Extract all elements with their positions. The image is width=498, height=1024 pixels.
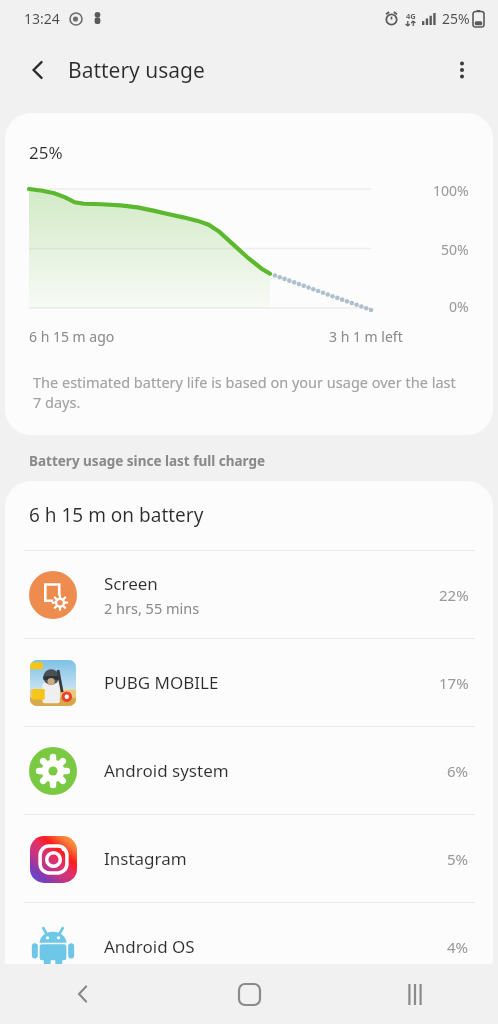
staticText: Android OS [104,935,195,958]
staticText: 100% [433,181,469,200]
staticText: 0% [449,297,469,316]
staticText: 13:24 [24,9,60,28]
staticText: 4G [406,11,416,21]
button[interactable]: More options [438,46,486,94]
button[interactable]: PUBG MOBILE [5,639,493,726]
button[interactable]: Home [166,964,332,1024]
button[interactable]: Recents [332,964,498,1024]
button[interactable]: Instagram [5,815,493,902]
staticText: 5% [447,849,469,869]
staticText: 6 h 15 m ago [29,327,115,346]
button[interactable]: Back [0,964,166,1024]
staticText: 50% [441,240,469,259]
staticText: Screen [104,572,158,595]
staticText: 6% [447,761,469,781]
staticText: 22% [439,585,469,605]
button[interactable]: Back [14,46,62,94]
button[interactable]: Android system [5,727,493,814]
staticText: Android system [104,759,229,782]
staticText: Battery usage since last full charge [29,452,266,470]
staticText: Instagram [104,847,187,870]
staticText: PUBG MOBILE [104,671,219,694]
staticText: 25% [442,9,470,28]
button[interactable]: Screen [5,551,493,638]
staticText: 3 h 1 m left [329,327,403,346]
button[interactable]: Android OS [5,903,493,990]
staticText: 6 h 15 m on battery [29,502,204,528]
staticText: 4% [447,937,469,957]
staticText: 25% [29,141,63,164]
staticText: 17% [439,673,469,693]
staticText: Battery usage [68,56,205,85]
staticText: The estimated battery life is based on y… [33,372,467,413]
staticText: 2 hrs, 55 mins [104,598,200,618]
